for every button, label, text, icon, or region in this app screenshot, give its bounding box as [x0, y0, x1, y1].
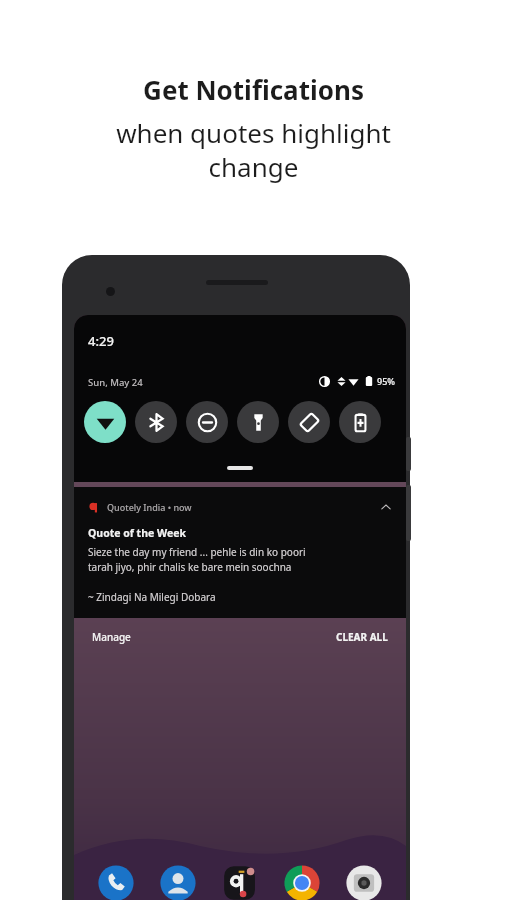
staticText: when quotes highlight change	[116, 115, 391, 184]
staticText: ~ Zindagi Na Milegi Dobara	[88, 590, 216, 604]
staticText: Get Notifications	[143, 72, 364, 107]
staticText: 4:29	[88, 332, 114, 350]
button[interactable]: Collapse	[378, 499, 394, 515]
button[interactable]: Contacts	[156, 861, 200, 900]
button[interactable]: Wi-Fi	[84, 401, 126, 443]
staticText: Quotely India • now	[107, 501, 192, 513]
button[interactable]: Auto rotate	[288, 401, 330, 443]
button[interactable]: Quotely India • now	[74, 487, 406, 618]
button[interactable]: Manage	[88, 626, 135, 648]
button[interactable]: Camera	[342, 861, 386, 900]
button[interactable]: Do Not Disturb	[186, 401, 228, 443]
button[interactable]: CLEAR ALL	[332, 626, 392, 648]
button[interactable]: Quotely	[218, 861, 262, 900]
button[interactable]: Flashlight	[237, 401, 279, 443]
staticText: Manage	[92, 630, 131, 644]
staticText: Sun, May 24	[88, 376, 143, 389]
staticText: CLEAR ALL	[336, 630, 388, 644]
button[interactable]: Battery Saver	[339, 401, 381, 443]
button[interactable]: Phone	[94, 861, 138, 900]
staticText: Quote of the Week	[88, 526, 186, 540]
staticText: Sieze the day my friend ... pehle is din…	[88, 545, 306, 574]
button[interactable]: Chrome	[280, 861, 324, 900]
button[interactable]: Bluetooth	[135, 401, 177, 443]
staticText: 95%	[377, 375, 395, 387]
